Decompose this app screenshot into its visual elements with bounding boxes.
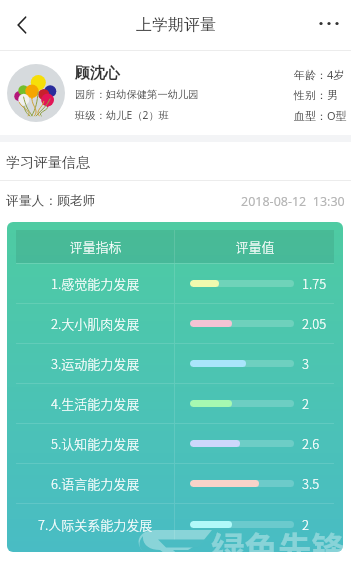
- staticText: 6.语言能力发展: [51, 474, 140, 493]
- staticText: 2: [302, 394, 309, 413]
- staticText: 评量指标: [69, 237, 122, 256]
- staticText: 2.05: [302, 314, 326, 333]
- staticText: 1.感觉能力发展: [51, 274, 140, 293]
- staticText: 2.6: [302, 434, 320, 453]
- staticText: 性别：男: [294, 88, 338, 102]
- staticText: 绿色先锋: [211, 522, 343, 552]
- staticText: 3.5: [302, 474, 320, 493]
- staticText: 3.运动能力发展: [51, 354, 140, 373]
- staticText: 2018-08-12 13:30: [241, 193, 345, 210]
- button[interactable]: More options: [307, 0, 351, 50]
- staticText: 年龄：4岁: [294, 67, 345, 82]
- staticText: 5.认知能力发展: [51, 434, 140, 453]
- staticText: 血型：O型: [294, 108, 347, 123]
- button[interactable]: Back: [0, 3, 44, 47]
- staticText: 7.人际关系能力发展: [38, 515, 153, 534]
- staticText: 评量值: [235, 237, 275, 256]
- staticText: 上学期评量: [136, 15, 216, 35]
- staticText: 4.生活能力发展: [51, 394, 140, 413]
- staticText: 班级：幼儿E（2）班: [75, 108, 169, 122]
- staticText: 顾沈心: [75, 64, 120, 83]
- staticText: 2.大小肌肉发展: [51, 314, 140, 333]
- staticText: 2: [302, 515, 309, 534]
- staticText: 1.75: [302, 274, 326, 293]
- staticText: 学习评量信息: [6, 154, 90, 172]
- staticText: 评量人：顾老师: [6, 193, 96, 209]
- staticText: 园所：妇幼保健第一幼儿园: [75, 88, 199, 101]
- staticText: 3: [302, 354, 309, 373]
